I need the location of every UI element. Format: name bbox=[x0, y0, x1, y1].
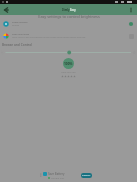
staticText: Filter Color Mode bbox=[12, 33, 29, 36]
button[interactable]: INSTALL bbox=[81, 173, 92, 178]
staticText: Browse and Control bbox=[2, 43, 32, 47]
staticText: Screen Rotation bbox=[12, 21, 28, 24]
button[interactable]: Rate star bbox=[61, 75, 64, 78]
button[interactable]: Back bbox=[1, 5, 11, 15]
button[interactable]: More options bbox=[126, 5, 136, 15]
staticText: 100% bbox=[64, 62, 73, 66]
staticText: Save Battery bbox=[48, 172, 65, 176]
staticText: Rate this App bbox=[61, 71, 76, 74]
button[interactable]: Brightness slider bbox=[0, 48, 137, 57]
staticText: Google Play bbox=[51, 176, 65, 179]
button[interactable]: Screen Rotation bbox=[0, 18, 137, 30]
button[interactable]: Rate star bbox=[73, 75, 76, 78]
staticText: INSTALL bbox=[82, 174, 91, 177]
staticText: Select colors to dim the brightness of f… bbox=[12, 36, 86, 39]
staticText: Easy bbox=[70, 8, 76, 12]
button[interactable]: Rate star bbox=[64, 75, 67, 78]
button[interactable]: Rate star bbox=[70, 75, 73, 78]
button[interactable]: Filter Color Mode bbox=[0, 30, 137, 42]
staticText: Dimly bbox=[62, 8, 70, 12]
button[interactable]: Rate star bbox=[67, 75, 70, 78]
button[interactable]: 100% bbox=[63, 58, 74, 69]
staticText: Enabled bbox=[12, 24, 20, 27]
staticText: Easy settings to control brightness bbox=[38, 14, 100, 19]
